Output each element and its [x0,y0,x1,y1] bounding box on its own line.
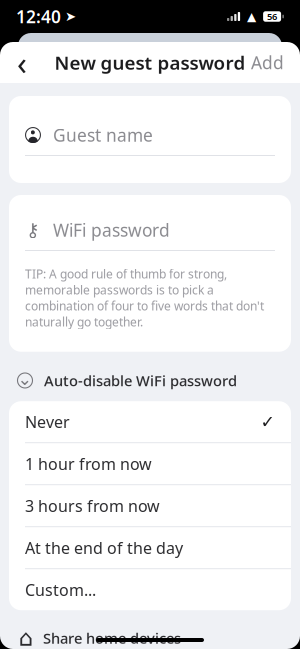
button[interactable]: Back [5,43,39,82]
staticText: New guest password [54,50,245,75]
staticText: Custom... [25,579,96,600]
staticText: ⚷ [26,219,40,241]
staticText: ➤ [65,9,76,24]
staticText: ⌂ [18,625,32,649]
staticText: WiFi password [53,218,170,241]
staticText: At the end of the day [25,537,183,558]
staticText: ✓ [260,412,275,432]
staticText: Auto-disable WiFi password [44,371,237,390]
button[interactable]: Never [9,401,291,443]
staticText: ● [30,129,35,135]
button[interactable]: At the end of the day [9,527,291,569]
staticText: Add [251,51,284,74]
button[interactable]: 1 hour from now [9,443,291,485]
staticText: 3 hours from now [25,495,160,516]
staticText: 1 hour from now [25,453,152,474]
button[interactable]: Add [240,43,295,82]
staticText: TIP: A good rule of thumb for strong, me… [25,266,264,330]
button[interactable]: Custom... [9,569,291,610]
staticText: 12:40 [16,5,61,28]
button[interactable]: 3 hours from now [9,485,291,527]
staticText: Guest name [53,123,153,146]
staticText: ⌄ [17,369,32,389]
staticText: Never [25,411,70,432]
staticText: ▲ [247,10,256,23]
staticText: Share home devices [43,628,181,648]
staticText: ‹ [17,41,27,84]
staticText: 56 [267,10,277,23]
